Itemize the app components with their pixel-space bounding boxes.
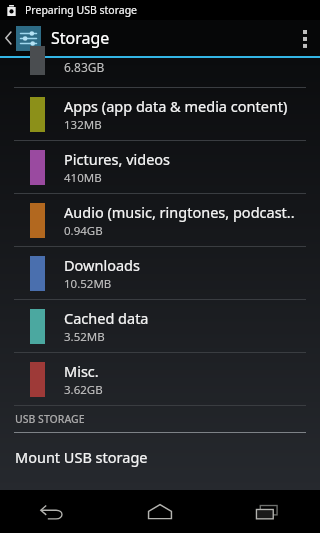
staticText: 3.62GB — [64, 382, 103, 398]
staticText: Misc. — [64, 361, 99, 381]
staticText: 3.52MB — [64, 329, 105, 345]
staticText: 0.94GB — [64, 223, 103, 239]
button[interactable]: Audio (music, ringtones, podcast.. — [0, 194, 320, 246]
button[interactable]: Cached data — [0, 300, 320, 352]
button[interactable]: 6.83GB — [0, 58, 320, 87]
staticText: 6.83GB — [64, 59, 105, 75]
button[interactable]: Back — [0, 20, 41, 56]
staticText: Audio (music, ringtones, podcast.. — [64, 202, 295, 222]
staticText: 132MB — [64, 117, 102, 133]
staticText: Downloads — [64, 255, 140, 275]
button[interactable]: Downloads — [0, 247, 320, 299]
staticText: USB STORAGE — [15, 412, 85, 426]
staticText: Storage — [51, 27, 110, 49]
button[interactable]: Apps (app data & media content) — [0, 88, 320, 140]
button[interactable]: Pictures, videos — [0, 141, 320, 193]
button[interactable]: Home — [106, 490, 213, 533]
button[interactable]: Recent apps — [213, 490, 320, 533]
staticText: 410MB — [64, 170, 102, 186]
button[interactable]: More options — [290, 20, 320, 56]
staticText: Preparing USB storage — [25, 3, 138, 17]
staticText: Pictures, videos — [64, 149, 171, 169]
button[interactable]: Back — [0, 490, 106, 533]
staticText: Apps (app data & media content) — [64, 96, 288, 116]
button[interactable]: Mount USB storage — [0, 433, 320, 481]
staticText: Cached data — [64, 308, 149, 328]
staticText: Mount USB storage — [15, 447, 148, 467]
button[interactable]: Misc. — [0, 353, 320, 405]
staticText: 10.52MB — [64, 276, 112, 292]
